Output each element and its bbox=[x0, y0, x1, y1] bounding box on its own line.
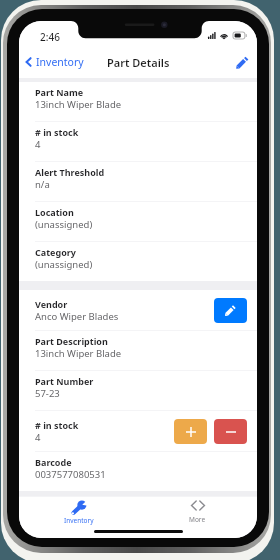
button[interactable]: Increase stock bbox=[174, 419, 207, 444]
staticText: 4 bbox=[35, 138, 41, 151]
staticText: Part Number bbox=[35, 375, 94, 387]
button[interactable]: Part Description bbox=[19, 331, 257, 370]
staticText: # in stock bbox=[35, 419, 79, 431]
button[interactable]: Inventory bbox=[24, 46, 257, 78]
button[interactable]: Barcode bbox=[19, 452, 257, 491]
button[interactable]: # in stock bbox=[19, 122, 257, 161]
button[interactable]: Part Number bbox=[19, 371, 257, 410]
staticText: 4 bbox=[35, 431, 41, 444]
staticText: # in stock bbox=[35, 126, 79, 138]
staticText: Part Name bbox=[35, 86, 84, 98]
staticText: 2:46 bbox=[40, 30, 60, 44]
staticText: Category bbox=[35, 246, 76, 258]
button[interactable]: Category bbox=[19, 242, 257, 281]
staticText: Alert Threshold bbox=[35, 166, 105, 178]
staticText: Barcode bbox=[35, 456, 72, 468]
staticText: (unassigned) bbox=[35, 258, 93, 271]
staticText: (unassigned) bbox=[35, 218, 93, 231]
button[interactable]: Location bbox=[19, 202, 257, 241]
staticText: Part Description bbox=[35, 335, 108, 347]
staticText: Inventory bbox=[64, 516, 94, 525]
staticText: 13inch Wiper Blade bbox=[35, 347, 122, 360]
button[interactable]: Part Name bbox=[19, 82, 257, 121]
staticText: Anco Wiper Blades bbox=[35, 310, 119, 323]
button[interactable]: Inventory bbox=[19, 497, 138, 526]
staticText: Part Details bbox=[107, 55, 170, 70]
staticText: Vendor bbox=[35, 298, 68, 310]
staticText: 0037577080531 bbox=[35, 468, 106, 481]
button[interactable]: Decrease stock bbox=[214, 419, 247, 444]
staticText: More bbox=[189, 515, 206, 524]
staticText: 57-23 bbox=[35, 387, 60, 400]
staticText: n/a bbox=[35, 178, 50, 191]
button[interactable]: Edit vendor bbox=[214, 298, 247, 323]
staticText: Location bbox=[35, 206, 74, 218]
staticText: 13inch Wiper Blade bbox=[35, 98, 122, 111]
button[interactable]: More bbox=[138, 497, 257, 526]
button[interactable]: Alert Threshold bbox=[19, 162, 257, 201]
button[interactable]: Edit bbox=[233, 53, 251, 71]
staticText: Inventory bbox=[36, 55, 84, 69]
